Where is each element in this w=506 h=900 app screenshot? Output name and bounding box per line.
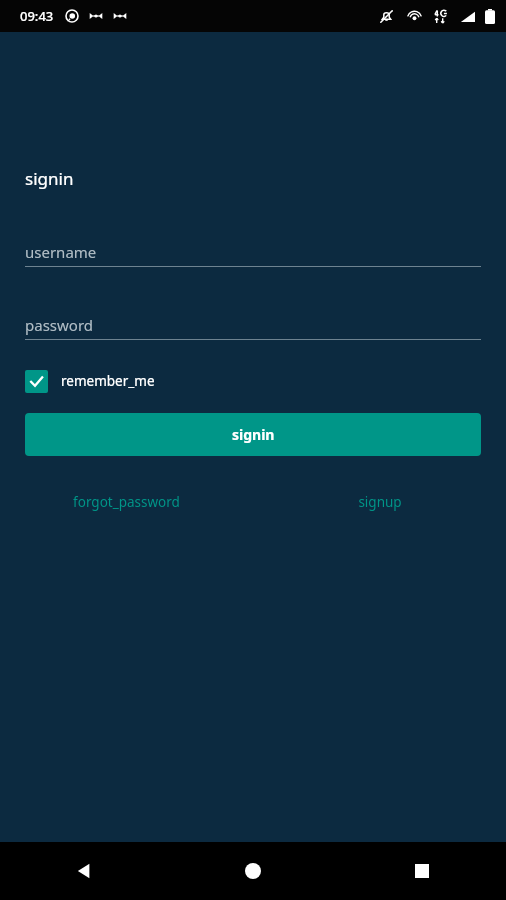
staticText: signup	[358, 493, 402, 511]
staticText: 09:43	[20, 7, 54, 25]
staticText: forgot_password	[73, 493, 180, 511]
button[interactable]: password	[25, 311, 481, 340]
button[interactable]: Home	[168, 842, 337, 900]
button[interactable]: Back	[0, 842, 168, 900]
staticText: signin	[232, 425, 275, 444]
staticText: username	[25, 242, 97, 262]
button[interactable]: Recent apps	[337, 842, 506, 900]
button[interactable]: remember_me	[25, 366, 155, 396]
staticText: password	[25, 315, 93, 335]
button[interactable]: forgot_password	[0, 489, 253, 515]
staticText: signin	[25, 167, 74, 190]
button[interactable]: username	[25, 238, 481, 267]
staticText: remember_me	[61, 372, 155, 390]
button[interactable]: signup	[253, 489, 506, 515]
button[interactable]: signin	[25, 413, 481, 456]
